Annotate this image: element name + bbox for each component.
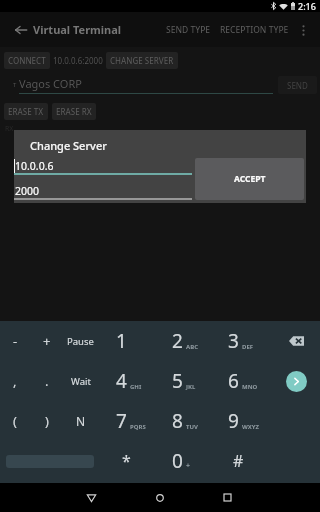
button[interactable]: 1 bbox=[104, 321, 160, 361]
staticText: PQRS bbox=[130, 423, 146, 431]
staticText: CHANGE SERVER bbox=[110, 55, 174, 66]
button[interactable]: Wait bbox=[64, 361, 97, 401]
staticText: SEND TYPE bbox=[166, 24, 211, 36]
button[interactable]: 7 bbox=[104, 401, 160, 441]
button[interactable]: 6 bbox=[216, 361, 272, 401]
staticText: RECEPTION TYPE bbox=[220, 24, 289, 36]
staticText: N bbox=[76, 413, 86, 429]
button[interactable]: 5 bbox=[160, 361, 216, 401]
staticText: 4 bbox=[116, 368, 127, 394]
button[interactable]: Pause bbox=[64, 321, 97, 361]
button[interactable]: ) bbox=[30, 401, 64, 441]
staticText: 9 bbox=[228, 408, 239, 434]
staticText: 2:16 bbox=[298, 0, 316, 12]
button[interactable]: Backspace bbox=[272, 321, 320, 361]
staticText: ABC bbox=[186, 343, 198, 351]
button[interactable]: SEND TYPE bbox=[162, 18, 215, 42]
button[interactable]: 3 bbox=[216, 321, 272, 361]
staticText: , bbox=[13, 372, 17, 390]
staticText: TUV bbox=[186, 423, 198, 431]
staticText: SEND bbox=[287, 80, 308, 91]
staticText: ACCEPT bbox=[234, 173, 266, 185]
button[interactable]: . bbox=[30, 361, 64, 401]
staticText: 6 bbox=[228, 368, 239, 394]
staticText: 1 bbox=[116, 328, 127, 354]
button[interactable]: # bbox=[216, 441, 272, 481]
button[interactable]: 9 bbox=[216, 401, 272, 441]
staticText: Virtual Terminal bbox=[33, 22, 122, 37]
staticText: Pause bbox=[67, 335, 94, 348]
button[interactable]: Recents bbox=[209, 483, 245, 512]
button[interactable]: Space bbox=[0, 441, 104, 481]
staticText: MNO bbox=[242, 383, 258, 391]
staticText: - bbox=[13, 332, 18, 350]
staticText: 10.0.0.6:2000 bbox=[53, 55, 103, 66]
staticText: 0 bbox=[172, 448, 183, 474]
button[interactable]: ( bbox=[0, 401, 30, 441]
button[interactable]: , bbox=[0, 361, 30, 401]
button[interactable]: ERASE RX bbox=[52, 103, 96, 120]
button[interactable]: N bbox=[64, 401, 97, 441]
staticText: 2000 bbox=[15, 184, 40, 198]
button[interactable]: 8 bbox=[160, 401, 216, 441]
button[interactable]: * bbox=[104, 441, 160, 481]
staticText: + bbox=[43, 332, 51, 350]
staticText: + bbox=[186, 461, 191, 471]
staticText: Vagos CORP bbox=[19, 76, 82, 91]
staticText: GHI bbox=[130, 383, 142, 391]
staticText: CONNECT bbox=[8, 55, 46, 66]
staticText: WXYZ bbox=[242, 423, 260, 431]
staticText: JKL bbox=[186, 383, 196, 391]
staticText: * bbox=[122, 450, 131, 472]
staticText: 2 bbox=[172, 328, 183, 354]
staticText: ) bbox=[45, 412, 49, 430]
staticText: Change Server bbox=[30, 138, 107, 153]
button[interactable]: CONNECT bbox=[4, 52, 50, 69]
staticText: . bbox=[45, 372, 49, 390]
staticText: ( bbox=[13, 412, 17, 430]
button[interactable]: ERASE TX bbox=[4, 103, 48, 120]
staticText: 7 bbox=[116, 408, 127, 434]
staticText: 10.0.0.6 bbox=[15, 159, 54, 173]
staticText: T bbox=[13, 81, 17, 89]
button[interactable]: Enter bbox=[272, 361, 320, 401]
button[interactable]: Back bbox=[73, 483, 109, 512]
staticText: RX bbox=[5, 124, 14, 134]
staticText: 3 bbox=[228, 328, 239, 354]
button[interactable]: 0 bbox=[160, 441, 216, 481]
button[interactable]: + bbox=[30, 321, 64, 361]
staticText: Wait bbox=[71, 375, 91, 388]
staticText: ERASE RX bbox=[56, 106, 92, 117]
staticText: 8 bbox=[172, 408, 183, 434]
button[interactable]: ACCEPT bbox=[195, 158, 304, 200]
button[interactable]: SEND bbox=[278, 76, 317, 94]
staticText: ERASE TX bbox=[8, 106, 44, 117]
button[interactable]: More options bbox=[293, 20, 313, 40]
button[interactable]: Back bbox=[0, 12, 33, 47]
staticText: # bbox=[233, 450, 244, 472]
button[interactable]: - bbox=[0, 321, 30, 361]
button[interactable]: RECEPTION TYPE bbox=[216, 18, 293, 42]
button[interactable]: Home bbox=[142, 483, 178, 512]
staticText: 5 bbox=[172, 368, 183, 394]
button[interactable]: 4 bbox=[104, 361, 160, 401]
button[interactable]: CHANGE SERVER bbox=[106, 52, 178, 69]
button[interactable]: 2 bbox=[160, 321, 216, 361]
staticText: DEF bbox=[242, 343, 254, 351]
